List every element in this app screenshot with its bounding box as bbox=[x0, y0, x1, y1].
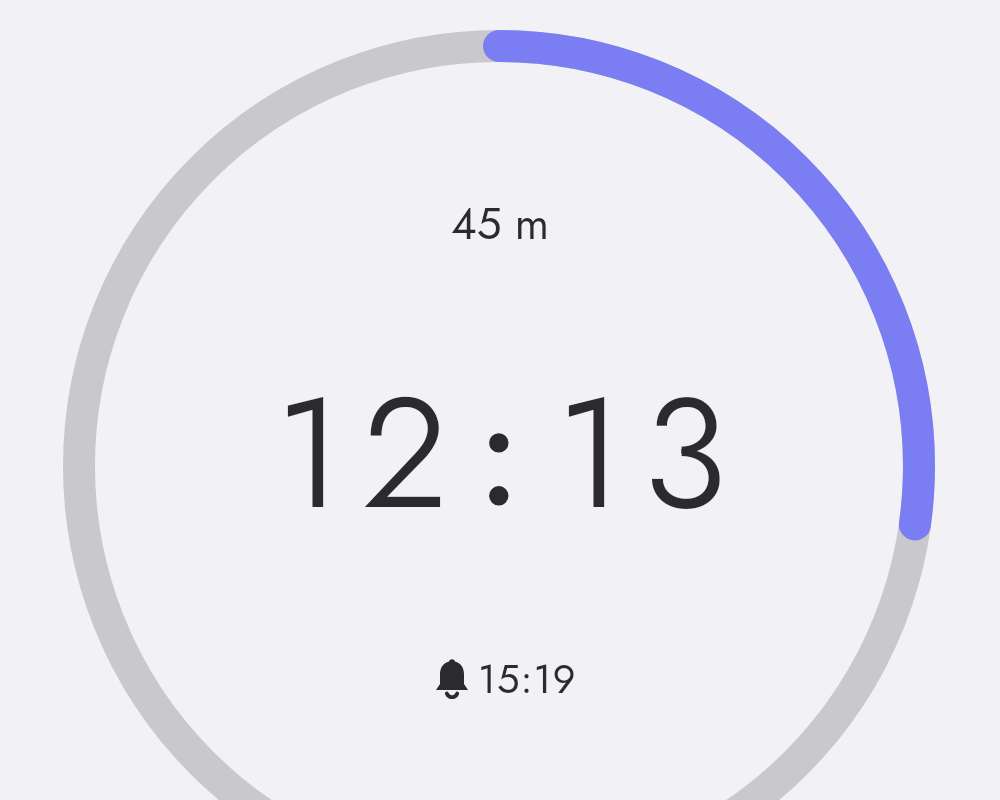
button[interactable]: 15:19 bbox=[434, 650, 577, 708]
button[interactable]: 13 bbox=[556, 341, 746, 565]
staticText: 45 m bbox=[451, 192, 549, 256]
staticText: 15:19 bbox=[478, 650, 577, 708]
button[interactable]: 12 bbox=[275, 341, 466, 565]
